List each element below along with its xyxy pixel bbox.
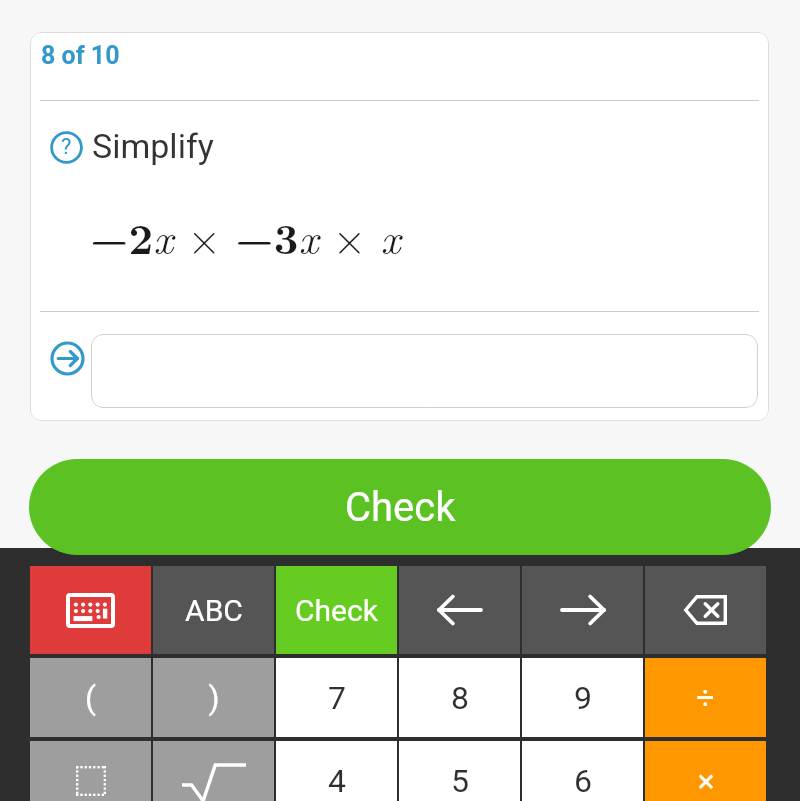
staticText: ? bbox=[61, 134, 72, 160]
other: Placeholder bbox=[76, 766, 106, 796]
staticText: 8 bbox=[451, 679, 469, 717]
button[interactable]: 7 bbox=[276, 658, 397, 737]
staticText: × bbox=[697, 762, 715, 800]
staticText: Simplify bbox=[92, 126, 214, 166]
staticText: ) bbox=[208, 679, 220, 717]
button[interactable]: Square root bbox=[153, 741, 274, 801]
staticText: 5 bbox=[451, 762, 469, 800]
button[interactable]: ( bbox=[30, 658, 151, 737]
staticText: 9 bbox=[574, 679, 592, 717]
button[interactable]: Next bbox=[522, 566, 643, 654]
button[interactable]: Previous bbox=[399, 566, 520, 654]
button[interactable]: 4 bbox=[276, 741, 397, 801]
button[interactable]: Hide keyboard bbox=[30, 566, 151, 654]
staticText: ( bbox=[85, 679, 96, 717]
button[interactable]: Check bbox=[29, 459, 771, 555]
button[interactable]: 6 bbox=[522, 741, 643, 801]
button[interactable]: Backspace bbox=[645, 566, 766, 654]
other: Previous bbox=[439, 595, 481, 625]
button[interactable]: Submit answer bbox=[50, 341, 85, 376]
staticText: 7 bbox=[328, 679, 346, 717]
button[interactable]: ÷ bbox=[645, 658, 766, 737]
button[interactable]: Placeholder bbox=[30, 741, 151, 801]
staticText: 4 bbox=[328, 762, 346, 800]
other: Hide keyboard bbox=[68, 595, 113, 626]
staticText: 8 of 10 bbox=[41, 41, 120, 70]
other: Backspace bbox=[684, 595, 727, 625]
button[interactable]: 8 bbox=[399, 658, 520, 737]
other: Next bbox=[562, 595, 604, 625]
staticText: ÷ bbox=[696, 679, 715, 717]
staticText: ABC bbox=[185, 593, 243, 628]
button[interactable] bbox=[91, 334, 758, 408]
staticText: 6 bbox=[574, 762, 592, 800]
button[interactable]: 9 bbox=[522, 658, 643, 737]
button[interactable]: ) bbox=[153, 658, 274, 737]
button[interactable]: Check bbox=[276, 566, 397, 654]
staticText: Check bbox=[345, 484, 456, 531]
button[interactable]: ABC bbox=[153, 566, 274, 654]
button[interactable]: × bbox=[645, 741, 766, 801]
button[interactable]: 5 bbox=[399, 741, 520, 801]
staticText: −2x × −3x × x bbox=[90, 205, 401, 266]
staticText: Check bbox=[295, 593, 378, 628]
other: Square root bbox=[182, 761, 246, 801]
